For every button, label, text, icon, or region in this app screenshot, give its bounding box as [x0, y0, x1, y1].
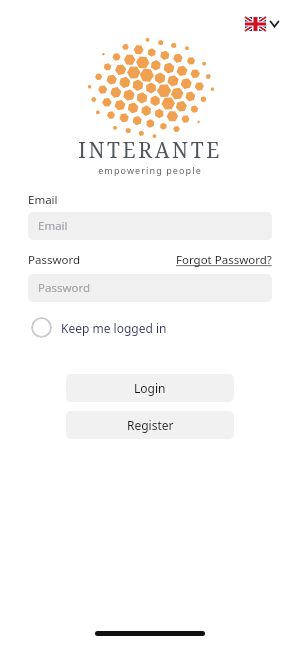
staticText: Keep me logged in [61, 320, 167, 336]
button[interactable] [245, 17, 279, 31]
staticText: Password [28, 252, 81, 268]
staticText: Email [38, 218, 68, 234]
staticText: Email [28, 192, 58, 208]
button[interactable]: Forgot Password? [176, 252, 272, 268]
staticText: Login [134, 380, 166, 396]
button[interactable]: Register [66, 411, 234, 439]
button[interactable]: Keep me logged in [31, 317, 167, 338]
staticText: INTERANTE [0, 136, 300, 165]
button[interactable]: Email [28, 212, 272, 240]
button[interactable]: Login [66, 374, 234, 402]
staticText: Password [38, 280, 91, 296]
button[interactable]: Password [28, 274, 272, 302]
staticText: empowering people [0, 164, 300, 176]
staticText: Register [127, 417, 174, 433]
